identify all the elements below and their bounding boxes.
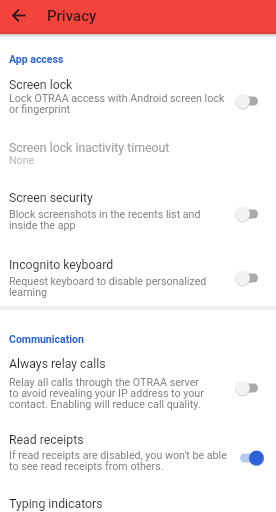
staticText: App access [9,53,64,65]
staticText: Read receipts [9,433,84,447]
button[interactable] [0,72,276,131]
staticText: contact. Enabling will reduce call quali… [9,398,201,411]
staticText: to see read receipts from others. [9,460,164,473]
staticText: If read receipts are disabled, you won't… [9,449,227,462]
staticText: Screen lock [9,78,73,92]
staticText: Block screenshots in the recents list an… [9,208,201,221]
staticText: Screen security [9,191,93,205]
button[interactable] [0,248,276,311]
button[interactable] [0,174,276,248]
button[interactable] [0,132,276,174]
button[interactable] [234,378,266,398]
staticText: or fingerprint [9,103,71,116]
button[interactable] [234,448,266,468]
button[interactable] [0,346,276,424]
staticText: Incognito keyboard [9,258,114,272]
staticText: Communication [9,333,84,345]
staticText: Relay all calls through the OTRAA server [9,376,199,389]
button[interactable] [0,424,276,487]
button[interactable] [234,268,266,288]
button[interactable] [0,487,276,512]
staticText: Privacy [47,7,97,25]
staticText: Always relay calls [9,357,106,371]
staticText: Request keyboard to disable personalized [9,275,207,288]
button[interactable] [234,91,266,111]
staticText: learning [9,286,48,299]
staticText: inside the app [9,219,76,232]
button[interactable] [10,7,28,25]
staticText: to avoid revealing your IP address to yo… [9,387,204,400]
staticText: None [9,154,35,167]
staticText: Typing indicators [9,497,103,511]
staticText: Lock OTRAA access with Android screen lo… [9,92,225,105]
staticText: Screen lock inactivity timeout [9,141,170,155]
button[interactable] [234,204,266,224]
